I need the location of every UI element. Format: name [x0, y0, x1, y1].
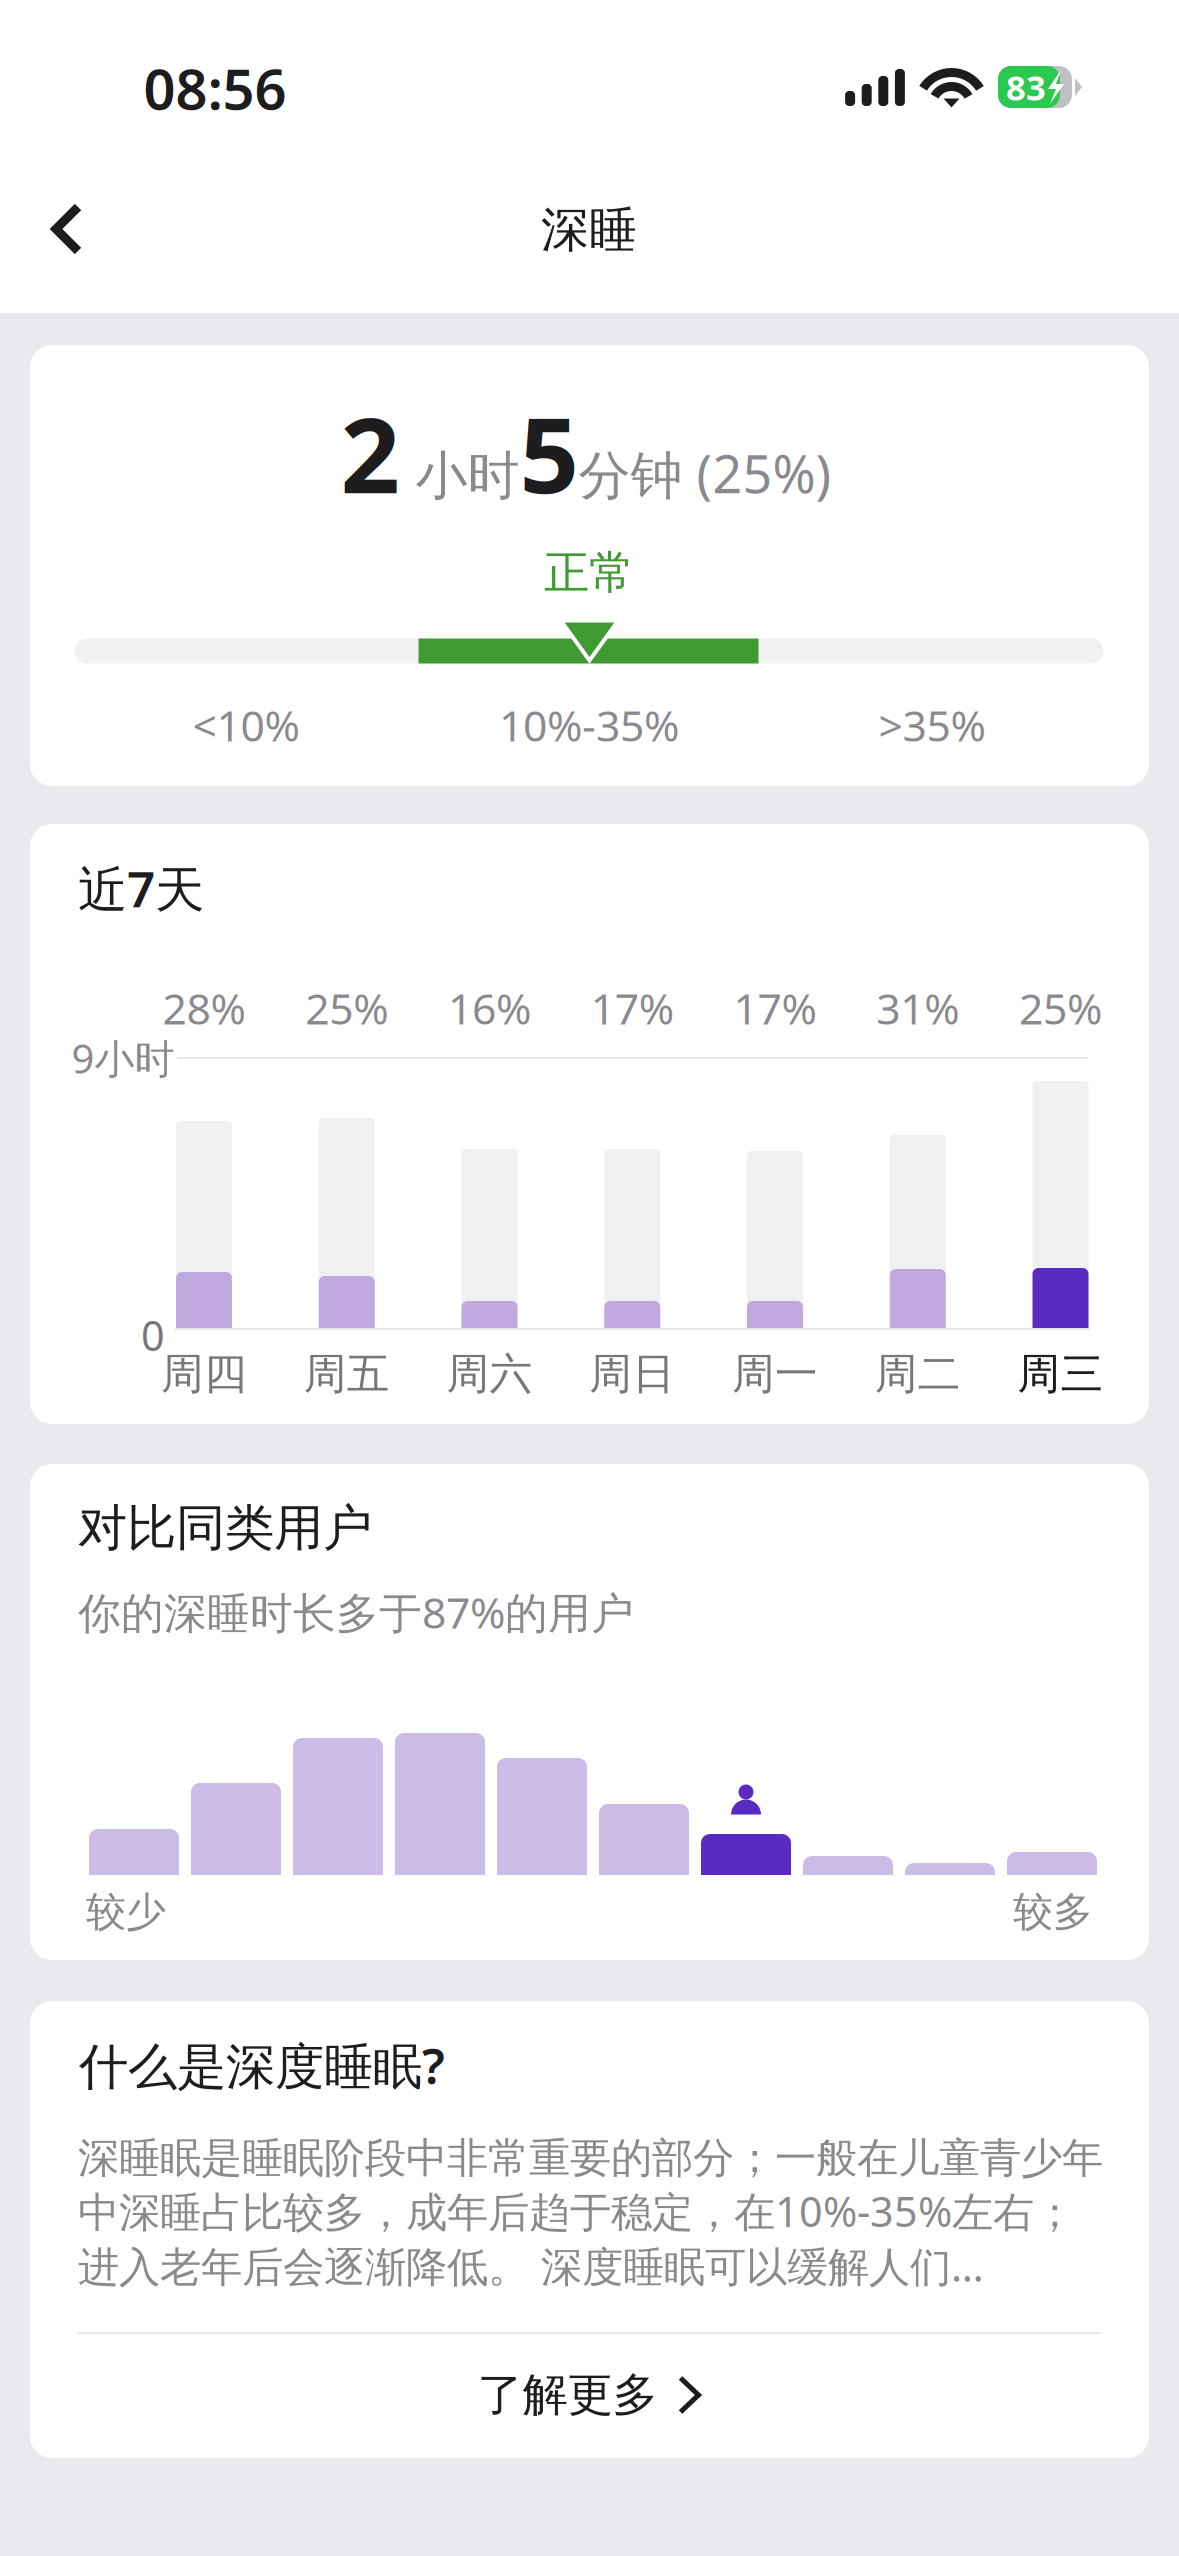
- staticText: 25%: [305, 980, 388, 1036]
- staticText: 周二: [875, 1348, 961, 1400]
- staticText: 0: [141, 1308, 165, 1362]
- staticText: 2: [340, 384, 399, 522]
- staticText: 了解更多: [477, 2367, 657, 2423]
- staticText: 你的深睡时长多于87%的用户: [78, 1584, 634, 1640]
- staticText: 周六: [446, 1348, 532, 1400]
- staticText: 周四: [161, 1348, 247, 1400]
- staticText: 什么是深度睡眠?: [79, 2032, 445, 2098]
- staticText: 9小时: [71, 1031, 174, 1084]
- staticText: 25%: [1019, 980, 1102, 1036]
- staticText: 28%: [162, 980, 245, 1036]
- staticText: 小时: [399, 444, 519, 508]
- staticText: 较多: [1013, 1887, 1093, 1936]
- staticText: 较少: [86, 1887, 166, 1936]
- staticText: 16%: [448, 980, 531, 1036]
- staticText: 深睡眠是睡眠阶段中非常重要的部分；一般在儿童青少年中深睡占比较多，成年后趋于稳定…: [78, 2133, 1103, 2293]
- staticText: 周一: [732, 1348, 818, 1400]
- button[interactable]: 返回: [13, 171, 121, 287]
- staticText: 正常: [544, 545, 634, 601]
- staticText: 周日: [589, 1348, 675, 1400]
- staticText: 10%-35%: [499, 697, 679, 753]
- staticText: 近7天: [78, 855, 204, 921]
- staticText: 周五: [304, 1348, 390, 1400]
- staticText: 对比同类用户: [78, 1498, 372, 1558]
- staticText: 17%: [591, 980, 674, 1036]
- staticText: 深睡: [541, 200, 637, 259]
- staticText: 周三: [1017, 1348, 1103, 1400]
- staticText: (25%): [682, 439, 831, 508]
- staticText: 08:56: [143, 51, 286, 125]
- staticText: 31%: [876, 980, 959, 1036]
- button[interactable]: 了解更多: [30, 2333, 1149, 2457]
- staticText: >35%: [878, 697, 985, 753]
- staticText: 5: [519, 384, 578, 522]
- staticText: 83: [1006, 64, 1046, 110]
- staticText: 17%: [733, 980, 816, 1036]
- staticText: 分钟: [578, 444, 682, 508]
- staticText: <10%: [192, 697, 299, 753]
